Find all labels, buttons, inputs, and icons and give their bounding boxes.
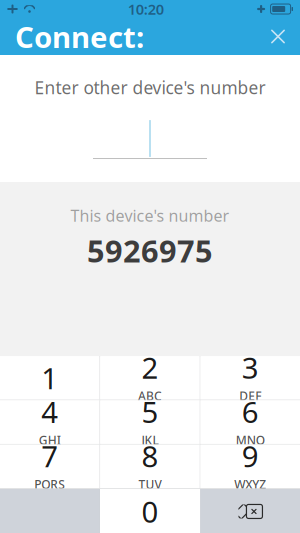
staticText: MNO bbox=[236, 432, 265, 448]
staticText: JKL bbox=[141, 432, 158, 448]
button[interactable]: Delete bbox=[201, 489, 300, 533]
button[interactable]: 6 bbox=[200, 400, 300, 444]
staticText: 3 bbox=[242, 348, 259, 387]
staticText: Connect: bbox=[15, 17, 144, 56]
staticText: PQRS bbox=[34, 476, 65, 492]
button[interactable]: 3 bbox=[200, 356, 300, 400]
staticText: GHI bbox=[39, 432, 61, 448]
staticText: 1 bbox=[41, 358, 58, 397]
button[interactable] bbox=[93, 113, 207, 159]
button[interactable]: 8 bbox=[100, 445, 200, 488]
staticText: TUV bbox=[138, 476, 161, 492]
staticText: 0 bbox=[141, 492, 158, 531]
staticText: 5926975 bbox=[87, 230, 213, 271]
button[interactable]: 5 bbox=[100, 400, 200, 444]
button[interactable]: 9 bbox=[200, 445, 300, 488]
staticText: 4 bbox=[41, 392, 58, 431]
staticText: Enter other device's number bbox=[34, 76, 265, 99]
button[interactable]: 4 bbox=[0, 400, 100, 444]
staticText: DEF bbox=[239, 388, 261, 404]
button[interactable]: 0 bbox=[100, 489, 200, 533]
staticText: 8 bbox=[141, 436, 158, 475]
button[interactable]: 2 bbox=[100, 356, 200, 400]
staticText: WXYZ bbox=[234, 476, 266, 492]
staticText: 10:20 bbox=[128, 0, 164, 19]
staticText: This device's number bbox=[70, 205, 229, 226]
button[interactable]: Close bbox=[259, 18, 297, 55]
staticText: 9 bbox=[242, 436, 259, 475]
staticText: 7 bbox=[41, 436, 58, 475]
button[interactable]: 1 bbox=[0, 356, 100, 400]
staticText: 5 bbox=[141, 392, 158, 431]
staticText: 2 bbox=[141, 348, 158, 387]
button[interactable]: 7 bbox=[0, 445, 100, 488]
staticText: 6 bbox=[242, 392, 259, 431]
staticText: ABC bbox=[138, 388, 162, 404]
